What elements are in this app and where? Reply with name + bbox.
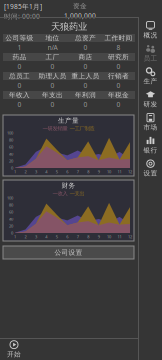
staticText: 资金	[73, 2, 87, 10]
staticText: 0	[11, 165, 13, 171]
staticText: 总资产	[75, 34, 96, 42]
staticText: 市场	[143, 123, 157, 131]
staticText: 100	[7, 130, 13, 136]
staticText: 0	[83, 81, 87, 90]
staticText: 0	[17, 100, 21, 109]
staticText: 7	[77, 234, 79, 239]
staticText: 2	[24, 169, 26, 174]
button[interactable]: 银行	[139, 136, 162, 154]
staticText: 研发	[143, 100, 157, 108]
staticText: 行销者	[108, 72, 129, 80]
staticText: 0	[17, 81, 21, 90]
staticText: —工厂制造	[69, 125, 94, 132]
staticText: 40	[9, 151, 13, 157]
staticText: 8	[87, 234, 89, 239]
staticText: 10	[107, 169, 111, 174]
staticText: 60	[9, 144, 13, 150]
button[interactable]: 开始	[2, 340, 26, 358]
staticText: 0	[11, 230, 13, 236]
staticText: 80	[9, 137, 13, 143]
staticText: 11	[117, 234, 121, 239]
staticText: 9	[98, 234, 100, 239]
staticText: n/A	[47, 43, 57, 52]
staticText: 员工	[143, 54, 157, 62]
staticText: 0	[83, 43, 87, 52]
staticText: 4	[45, 169, 47, 174]
staticText: 5	[56, 169, 58, 174]
staticText: 总员工	[9, 72, 30, 80]
staticText: 开始	[7, 350, 21, 358]
staticText: 设置	[143, 169, 157, 177]
staticText: 8	[116, 43, 120, 52]
staticText: 助理人员	[38, 72, 66, 80]
button[interactable]: 市场	[139, 113, 162, 131]
staticText: 0	[83, 62, 87, 71]
button[interactable]: 概况	[139, 21, 162, 39]
staticText: 药品	[12, 53, 26, 61]
button[interactable]: 研发	[139, 90, 162, 108]
button[interactable]: 生产	[139, 67, 162, 85]
staticText: 100	[7, 195, 13, 201]
staticText: 40	[9, 216, 13, 222]
staticText: 商店	[78, 53, 92, 61]
staticText: 年税金	[108, 91, 129, 99]
button[interactable]: 设置	[139, 159, 162, 177]
staticText: 0	[50, 81, 54, 90]
staticText: 0	[116, 100, 120, 109]
staticText: 60	[9, 209, 13, 215]
staticText: 地位	[45, 34, 59, 42]
button[interactable]: 公司设置	[3, 246, 134, 259]
staticText: —收入	[52, 190, 67, 197]
staticText: 9	[98, 169, 100, 174]
staticText: 1	[14, 234, 16, 239]
staticText: 12	[128, 169, 132, 174]
staticText: 年支出	[42, 91, 63, 99]
staticText: 工作时间	[104, 34, 132, 42]
staticText: 6	[66, 169, 68, 174]
staticText: 12	[128, 234, 132, 239]
staticText: 8	[87, 169, 89, 174]
staticText: 工厂	[45, 53, 59, 61]
staticText: 0	[83, 100, 87, 109]
staticText: 1	[14, 169, 16, 174]
staticText: —支出	[69, 190, 84, 197]
staticText: 10	[107, 234, 111, 239]
staticText: 6	[66, 234, 68, 239]
staticText: 0	[17, 62, 21, 71]
staticText: 重上人员	[71, 72, 99, 80]
staticText: 1,000,000	[64, 11, 96, 20]
staticText: 4	[45, 234, 47, 239]
button[interactable]: 员工	[139, 44, 162, 62]
staticText: 时间: 00:00	[4, 12, 40, 21]
staticText: 银行	[143, 146, 157, 154]
staticText: 研究所	[108, 53, 129, 61]
staticText: 0	[50, 62, 54, 71]
staticText: 80	[9, 202, 13, 208]
staticText: 公司设置	[54, 248, 82, 257]
staticText: [1985年1月]	[4, 2, 42, 11]
staticText: 1	[17, 43, 21, 52]
staticText: —研发销量	[42, 125, 67, 132]
staticText: 年利润	[75, 91, 96, 99]
staticText: 公司等级	[5, 34, 33, 42]
staticText: 3	[35, 169, 37, 174]
staticText: 0	[50, 100, 54, 109]
staticText: 天狼药业	[51, 21, 87, 32]
staticText: 生产量	[58, 116, 79, 125]
staticText: 0	[116, 62, 120, 71]
staticText: 20	[9, 223, 13, 229]
staticText: 0	[116, 81, 120, 90]
staticText: 11	[117, 169, 121, 174]
staticText: 概况	[143, 31, 157, 39]
staticText: 2	[24, 234, 26, 239]
staticText: 生产	[143, 77, 157, 85]
staticText: 3	[35, 234, 37, 239]
staticText: 财务	[61, 181, 75, 190]
staticText: 7	[77, 169, 79, 174]
staticText: 年收入	[9, 91, 30, 99]
staticText: 5	[56, 234, 58, 239]
staticText: 20	[9, 158, 13, 164]
